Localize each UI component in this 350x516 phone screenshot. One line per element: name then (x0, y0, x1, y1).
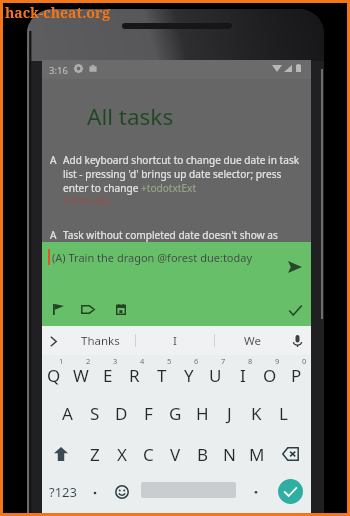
button[interactable]: Z (81, 433, 108, 475)
staticText: Z (90, 443, 100, 466)
staticText: 7 (221, 356, 226, 366)
staticText: Thanks (81, 333, 120, 349)
button[interactable]: Q (40, 354, 67, 396)
staticText: H (196, 402, 209, 425)
staticText: ?123 (49, 483, 77, 501)
button[interactable]: D (108, 392, 135, 434)
staticText: X (117, 443, 127, 466)
button[interactable]: V (162, 433, 189, 475)
button[interactable]: Thanks (66, 326, 135, 355)
button[interactable]: G (162, 392, 189, 434)
button[interactable]: Shift (40, 433, 81, 475)
button[interactable]: I (135, 326, 214, 355)
staticText: M (249, 443, 265, 466)
button[interactable]: Send (280, 252, 310, 282)
staticText: Task without completed date doesn't show… (63, 228, 278, 242)
button[interactable]: T (148, 354, 175, 396)
button[interactable]: (A) Train the dragon @forest due:today (44, 242, 284, 272)
staticText: K (251, 402, 262, 425)
button[interactable]: B (189, 433, 216, 475)
button[interactable]: Emoji (108, 472, 135, 512)
button[interactable]: R (121, 354, 148, 396)
button[interactable]: I (229, 354, 256, 396)
staticText: Add keyboard shortcut to change due date… (63, 153, 300, 167)
staticText: 1 (59, 356, 64, 366)
staticText: All tasks (87, 101, 174, 132)
button[interactable]: L (270, 392, 297, 434)
staticText: +todotxtExt (141, 181, 197, 195)
button[interactable]: U (202, 354, 229, 396)
button[interactable]: E (94, 354, 121, 396)
staticText: We (244, 333, 261, 349)
staticText: 4 (140, 356, 145, 366)
staticText: U (209, 364, 222, 387)
button[interactable]: K (243, 392, 270, 434)
button[interactable]: We (214, 326, 290, 355)
button[interactable]: Due date (110, 298, 132, 320)
button[interactable]: S (81, 392, 108, 434)
staticText: L (279, 402, 288, 425)
staticText: F (144, 402, 153, 425)
staticText: B (197, 443, 209, 466)
staticText: Y (184, 364, 194, 387)
staticText: enter to change (63, 181, 141, 195)
staticText: C (143, 443, 154, 466)
staticText: 3:16 (49, 64, 68, 77)
staticText: 2 days ago (63, 193, 111, 206)
staticText: hack-cheat.org (5, 3, 111, 22)
button[interactable]: F (135, 392, 162, 434)
button[interactable]: H (189, 392, 216, 434)
staticText: E (103, 364, 113, 387)
staticText: 8 (248, 356, 253, 366)
button[interactable]: More suggestions (42, 329, 64, 353)
staticText: G (169, 402, 182, 425)
button[interactable]: N (216, 433, 243, 475)
button[interactable]: Context (77, 298, 99, 320)
button[interactable]: M (243, 433, 270, 475)
staticText: 9 (275, 356, 280, 366)
button[interactable]: Comma (82, 472, 108, 512)
button[interactable]: W (67, 354, 94, 396)
staticText: 3 (113, 356, 118, 366)
button[interactable]: Enter (278, 479, 303, 504)
staticText: A (50, 228, 57, 242)
staticText: O (263, 364, 277, 387)
staticText: Q (47, 364, 61, 387)
staticText: T (157, 364, 167, 387)
staticText: A (50, 153, 57, 167)
button[interactable]: J (216, 392, 243, 434)
staticText: A (62, 402, 73, 425)
staticText: N (223, 443, 236, 466)
button[interactable]: ?123 (40, 472, 85, 512)
button[interactable]: Y (175, 354, 202, 396)
button[interactable]: Voice input (285, 329, 309, 353)
button[interactable]: C (135, 433, 162, 475)
staticText: J (227, 402, 232, 425)
button[interactable]: P (283, 354, 310, 396)
staticText: R (129, 364, 140, 387)
button[interactable]: Period (243, 472, 269, 512)
staticText: W (73, 364, 89, 387)
button[interactable]: Save (284, 299, 306, 321)
staticText: list - pressing 'd' brings up date selec… (63, 167, 282, 181)
button[interactable]: A (54, 392, 81, 434)
button[interactable]: O (256, 354, 283, 396)
button[interactable]: X (108, 433, 135, 475)
staticText: 5 (167, 356, 172, 366)
staticText: I (240, 364, 246, 387)
button[interactable]: Priority (47, 298, 69, 320)
staticText: V (170, 443, 181, 466)
staticText: 6 (194, 356, 199, 366)
staticText: 0 (302, 356, 307, 366)
staticText: I (173, 333, 177, 349)
staticText: 2 (86, 356, 91, 366)
staticText: D (115, 402, 128, 425)
staticText: S (90, 402, 100, 425)
staticText: P (291, 364, 302, 387)
button[interactable]: Backspace (270, 433, 311, 475)
staticText: (A) Train the dragon @forest due:today (52, 250, 253, 265)
